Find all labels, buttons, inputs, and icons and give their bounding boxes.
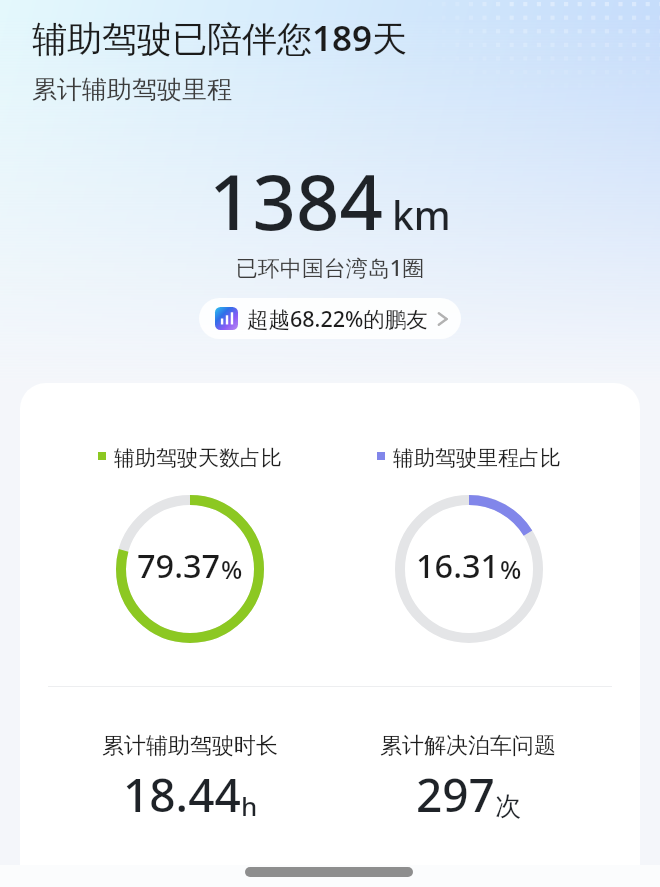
staticText: 1384 bbox=[209, 149, 383, 253]
button[interactable]: 辅助驾驶天数占比 79.37% bbox=[116, 495, 264, 643]
staticText: 16.31 bbox=[416, 543, 500, 587]
staticText: 次 bbox=[495, 790, 521, 823]
other: 查看详情 bbox=[437, 308, 449, 330]
staticText: % bbox=[500, 552, 522, 586]
staticText: 18.44 bbox=[123, 763, 241, 826]
staticText: km bbox=[392, 188, 451, 241]
button[interactable]: 排名统计 bbox=[199, 298, 461, 339]
staticText: 297 bbox=[416, 763, 495, 826]
staticText: 辅助驾驶已陪伴您189天 bbox=[32, 14, 408, 62]
staticText: 已环中国台湾岛1圈 bbox=[0, 252, 660, 282]
staticText: 累计解决泊车问题 bbox=[380, 732, 556, 760]
staticText: 累计辅助驾驶里程 bbox=[32, 74, 232, 105]
staticText: 累计辅助驾驶时长 bbox=[102, 732, 278, 760]
staticText: % bbox=[221, 552, 243, 586]
staticText: h bbox=[241, 788, 258, 823]
staticText: 79.37 bbox=[137, 543, 221, 587]
staticText: 超越68.22%的鹏友 bbox=[247, 304, 428, 333]
button[interactable]: 辅助驾驶里程占比 16.31% bbox=[395, 495, 543, 643]
other: 排名统计 bbox=[215, 307, 238, 330]
staticText: 辅助驾驶天数占比 bbox=[114, 445, 282, 471]
staticText: 辅助驾驶里程占比 bbox=[393, 445, 561, 471]
